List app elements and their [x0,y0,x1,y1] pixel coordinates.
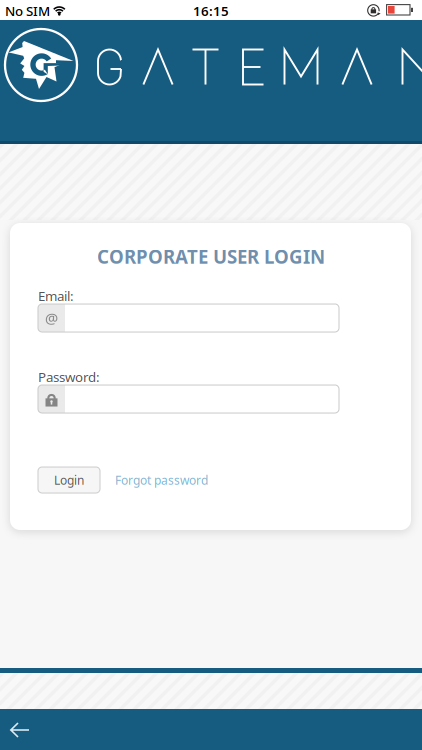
button[interactable]: Forgot password [115,471,208,489]
staticText: Email: [38,287,74,305]
button[interactable]: Login [38,467,100,493]
button[interactable]: Back [4,718,36,742]
staticText: 16:15 [193,2,229,20]
staticText: Password: [38,368,100,386]
staticText: No SIM [5,2,50,20]
staticText: Login [54,472,84,488]
staticText: @ [45,308,58,328]
staticText: Forgot password [115,472,208,488]
staticText: CORPORATE USER LOGIN [97,244,325,269]
